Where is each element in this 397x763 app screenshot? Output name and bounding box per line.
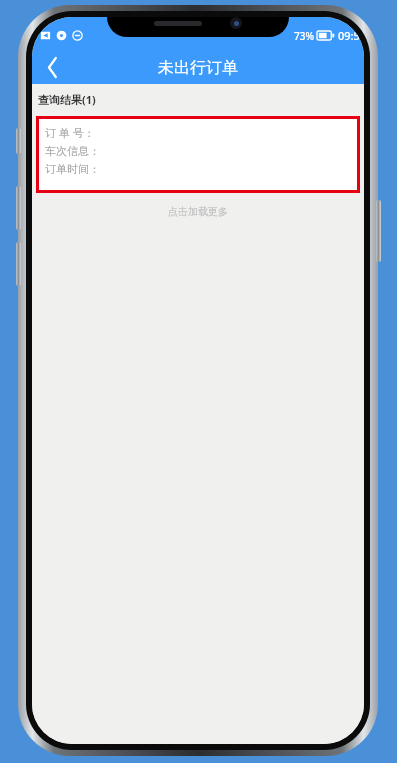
staticText: 09:5: [338, 28, 360, 43]
staticText: 点击加载更多: [168, 205, 228, 218]
staticText: 车次信息：: [45, 144, 100, 158]
staticText: 订 单 号：: [45, 125, 95, 140]
button[interactable]: 点击加载更多: [32, 195, 364, 227]
button[interactable]: 订 单 号：: [36, 116, 360, 193]
staticText: 查询结果(1): [38, 92, 96, 107]
staticText: 订单时间：: [45, 162, 100, 176]
button[interactable]: Back: [32, 51, 72, 84]
staticText: 73%: [294, 29, 314, 43]
staticText: 未出行订单: [158, 58, 238, 78]
